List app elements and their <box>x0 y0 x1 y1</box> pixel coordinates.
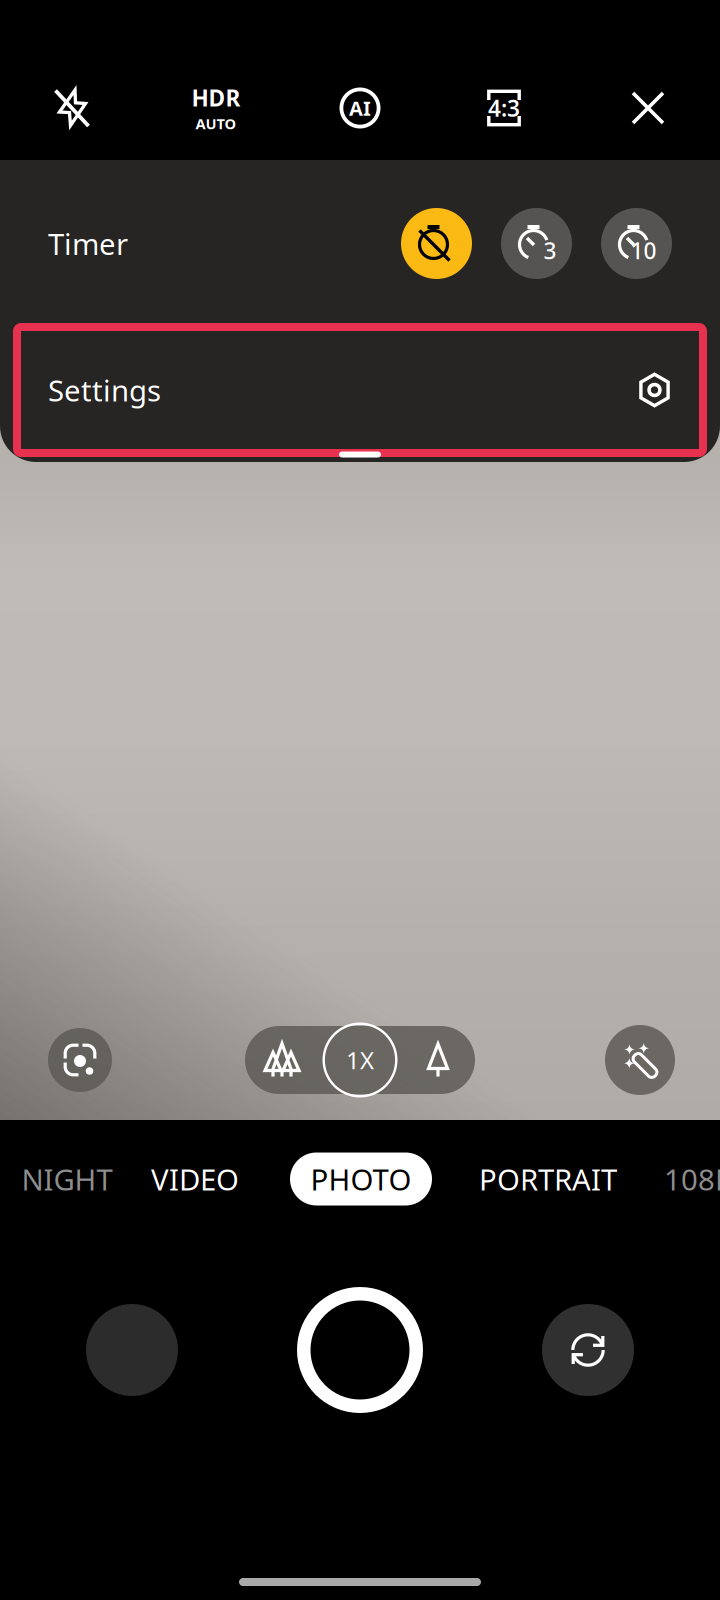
button[interactable]: Timer off <box>401 208 472 279</box>
staticText: 4:3 <box>488 93 520 123</box>
staticText: PHOTO <box>310 1159 411 1198</box>
button[interactable]: PORTRAIT <box>467 1145 629 1212</box>
staticText: 108M <box>664 1159 720 1198</box>
staticText: AI <box>349 95 371 121</box>
button[interactable]: 1X <box>319 1026 401 1094</box>
button[interactable]: VIDEO <box>139 1145 251 1212</box>
button[interactable]: Scan <box>44 1024 116 1096</box>
button[interactable]: NIGHT <box>9 1145 124 1212</box>
button[interactable]: Gallery <box>86 1304 178 1396</box>
button[interactable]: Shutter <box>297 1287 423 1413</box>
button[interactable]: AI scene detection <box>288 56 432 160</box>
button[interactable]: Flash off <box>0 56 144 160</box>
staticText: Timer <box>48 224 128 263</box>
button[interactable]: PHOTO <box>290 1152 432 1205</box>
button[interactable]: Filters <box>604 1024 676 1096</box>
staticText: 1X <box>346 1044 374 1076</box>
button[interactable]: HDR <box>144 56 288 160</box>
button[interactable]: Settings <box>0 327 720 453</box>
staticText: PORTRAIT <box>479 1159 617 1198</box>
staticText: Settings <box>48 370 161 409</box>
staticText: HDR <box>191 83 240 113</box>
button[interactable]: Ultra wide lens <box>245 1026 319 1094</box>
button[interactable]: Timer 10 seconds <box>601 208 672 279</box>
staticText: VIDEO <box>151 1159 239 1198</box>
button[interactable]: Close <box>576 56 720 160</box>
button[interactable]: 108M <box>652 1145 720 1212</box>
button[interactable]: Aspect ratio 4 by 3 <box>432 56 576 160</box>
button[interactable]: Timer 3 seconds <box>501 208 572 279</box>
staticText: NIGHT <box>21 1159 112 1198</box>
staticText: 3 <box>543 235 556 265</box>
button[interactable]: Telephoto lens <box>401 1026 475 1094</box>
staticText: AUTO <box>195 114 236 133</box>
button[interactable]: Switch camera <box>542 1304 634 1396</box>
staticText: 10 <box>630 235 656 265</box>
